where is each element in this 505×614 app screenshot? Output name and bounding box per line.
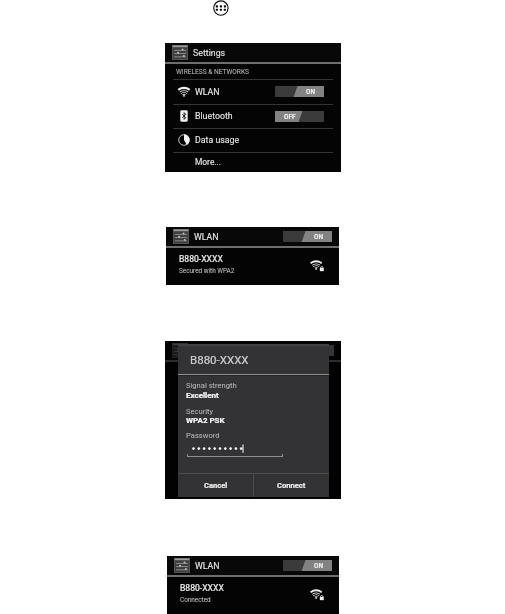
staticText: B880-XXXX [190, 353, 249, 366]
button[interactable]: WLAN [165, 79, 341, 104]
staticText: Connect [277, 481, 306, 490]
staticText: Data usage [195, 135, 240, 145]
button[interactable]: Switch on [285, 345, 334, 356]
button[interactable]: Switch on [283, 231, 332, 242]
staticText: ON [314, 562, 323, 570]
staticText: Security [186, 407, 214, 416]
staticText: More... [195, 157, 221, 167]
button[interactable]: Switch on [275, 86, 324, 97]
button[interactable]: Password field [187, 443, 283, 457]
staticText: Excellent [186, 391, 219, 400]
staticText: Cancel [204, 481, 228, 490]
staticText: OFF [284, 113, 296, 121]
staticText: Bluetooth [195, 111, 233, 121]
staticText: Settings [193, 48, 226, 58]
staticText: WLAN [194, 232, 219, 242]
button[interactable]: B880-XXXX [167, 576, 339, 614]
staticText: WLAN [195, 561, 220, 571]
staticText: WPA2 PSK [186, 416, 225, 425]
button[interactable]: WLAN [167, 556, 339, 575]
button[interactable]: WLAN [165, 341, 341, 360]
button[interactable]: B880-XXXX [166, 247, 339, 285]
staticText: B880-XXXX [180, 583, 224, 593]
button[interactable]: More... [165, 152, 341, 172]
button[interactable]: Cancel [178, 474, 253, 497]
staticText: WLAN [195, 87, 220, 97]
staticText: Signal strength [186, 381, 237, 390]
button[interactable]: Connect [254, 474, 329, 497]
button[interactable]: Apps [212, 0, 230, 18]
button[interactable]: B880-XXXX [165, 361, 341, 399]
staticText: WIRELESS & NETWORKS [176, 68, 249, 76]
staticText: Secured with WPA2 [179, 267, 235, 275]
button[interactable]: Data usage [165, 128, 341, 152]
button[interactable]: Switch off [275, 111, 324, 122]
staticText: Connected [180, 596, 211, 604]
button[interactable]: Bluetooth [165, 104, 341, 128]
staticText: Password [186, 431, 220, 440]
button[interactable]: Settings [165, 43, 341, 62]
button[interactable]: Switch on [283, 560, 332, 571]
staticText: B880-XXXX [178, 368, 222, 378]
staticText: ON [314, 233, 323, 241]
staticText: Secured with WPA2 [178, 381, 234, 389]
button[interactable]: WLAN [166, 227, 339, 246]
staticText: B880-XXXX [179, 254, 223, 264]
staticText: ON [306, 88, 315, 96]
